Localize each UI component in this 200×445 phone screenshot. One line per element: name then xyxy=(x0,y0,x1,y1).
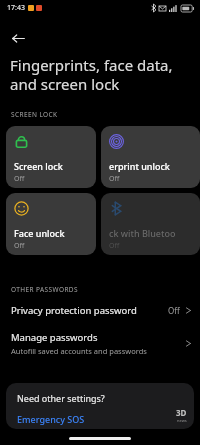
staticText: erprint unlock xyxy=(109,160,170,172)
staticText: Emergency SOS xyxy=(17,413,85,425)
staticText: news xyxy=(177,418,187,423)
staticText: 17:43 xyxy=(7,3,25,13)
staticText: 3D xyxy=(176,407,187,418)
staticText: OTHER PASSWORDS xyxy=(11,285,78,294)
button[interactable]: Screen lock xyxy=(6,126,96,188)
staticText: ck with Bluetoo xyxy=(109,227,176,239)
button[interactable]: Privacy protection password xyxy=(0,304,200,317)
button[interactable]: ck with Bluetoo xyxy=(101,193,200,255)
staticText: Manage passwords xyxy=(11,331,98,344)
button[interactable]: Emergency SOS xyxy=(17,413,85,425)
staticText: SCREEN LOCK xyxy=(11,110,58,119)
staticText: Autofill saved accounts and passwords xyxy=(11,346,147,356)
staticText: Off xyxy=(14,241,25,251)
staticText: Need other settings? xyxy=(17,392,105,404)
button[interactable]: Back xyxy=(5,25,31,51)
staticText: Face unlock xyxy=(14,227,65,239)
staticText: Off xyxy=(14,174,25,184)
staticText: Off xyxy=(109,174,120,184)
button[interactable]: Face unlock xyxy=(6,193,96,255)
staticText: Off xyxy=(168,305,180,316)
staticText: Privacy protection password xyxy=(11,304,137,317)
button[interactable]: Manage passwords xyxy=(0,331,200,356)
staticText: Fingerprints, face data, and screen lock xyxy=(10,55,173,94)
button[interactable]: erprint unlock xyxy=(101,126,200,188)
staticText: Screen lock xyxy=(14,160,63,172)
staticText: Off xyxy=(109,241,120,251)
